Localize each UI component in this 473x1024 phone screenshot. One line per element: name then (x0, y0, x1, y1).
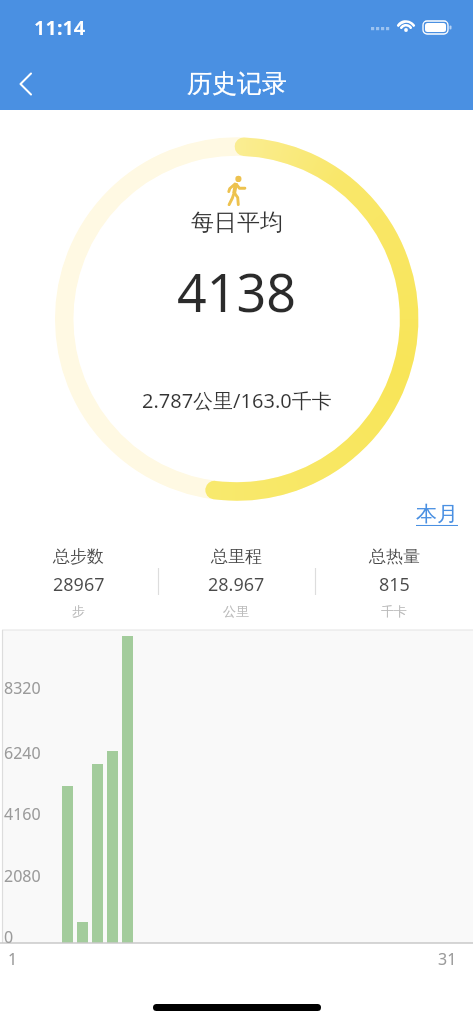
staticText: 步 (72, 603, 85, 619)
staticText: 0 (4, 926, 14, 948)
staticText: 总里程 (211, 546, 262, 567)
staticText: 每日平均 (191, 208, 283, 234)
staticText: 2.787公里/163.0千卡 (142, 387, 332, 414)
staticText: 千卡 (381, 603, 407, 619)
staticText: 本月 (416, 501, 458, 527)
staticText: 4138 (177, 256, 296, 318)
button[interactable]: 本月 (416, 501, 458, 527)
staticText: 4160 (4, 803, 41, 825)
staticText: 11:14 (34, 14, 86, 41)
button[interactable]: 总里程 (157, 546, 315, 619)
staticText: 31 (438, 948, 457, 970)
staticText: 公里 (223, 603, 249, 619)
staticText: 总热量 (369, 546, 420, 567)
button[interactable] (0, 56, 52, 108)
staticText: 815 (379, 572, 410, 597)
staticText: 28.967 (208, 572, 265, 597)
staticText: 8320 (4, 677, 41, 699)
staticText: 28967 (53, 572, 105, 597)
button[interactable]: 总步数 (0, 546, 157, 619)
staticText: 总步数 (53, 546, 104, 567)
staticText: 2080 (4, 865, 41, 887)
staticText: 1 (8, 948, 18, 970)
button[interactable]: 总热量 (315, 546, 473, 619)
staticText: 6240 (4, 742, 41, 764)
staticText: 历史记录 (187, 68, 287, 98)
